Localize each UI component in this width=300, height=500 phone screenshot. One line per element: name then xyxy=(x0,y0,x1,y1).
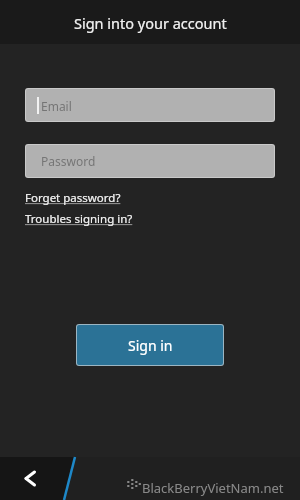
staticText: Email xyxy=(41,98,72,114)
button[interactable]: Password xyxy=(26,145,274,177)
button[interactable]: Forget password? xyxy=(25,190,121,206)
staticText: BlackBerryVietNam.net xyxy=(142,479,284,497)
button[interactable] xyxy=(0,457,300,500)
staticText: Password xyxy=(41,153,96,169)
staticText: Sign in xyxy=(128,336,173,355)
staticText: Sign into your account xyxy=(74,13,227,33)
button[interactable]: Email xyxy=(26,89,274,121)
button[interactable]: Sign in xyxy=(77,325,223,365)
button[interactable]: Troubles signing in? xyxy=(25,211,133,227)
